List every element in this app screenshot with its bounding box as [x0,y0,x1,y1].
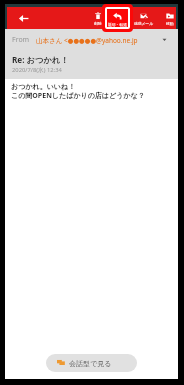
staticText: 会話型で見る [69,359,112,368]
button[interactable]: Reply or forward [105,7,130,29]
button[interactable]: 会話型で見る [46,354,137,372]
staticText: Re: おつかれ！ [12,54,69,65]
staticText: 迷惑メール [134,21,154,26]
button[interactable]: Back [13,8,33,28]
staticText: 移動 [166,21,174,26]
staticText: おつかれ。いいね！ この間OPENしたばかりの店はどうかな？ [11,82,145,100]
button[interactable]: Expand details [162,37,167,42]
button[interactable]: Spam [132,7,156,29]
staticText: From [12,35,30,45]
staticText: 削除 [94,21,102,26]
staticText: 山本さん <●●●●●@yahoo.ne.jp [36,36,138,45]
button[interactable]: Move [159,7,181,29]
staticText: 返信・転送 [108,22,127,27]
button[interactable]: Delete [87,7,109,29]
staticText: 2020/7/8(水) 12:34 [12,66,62,74]
